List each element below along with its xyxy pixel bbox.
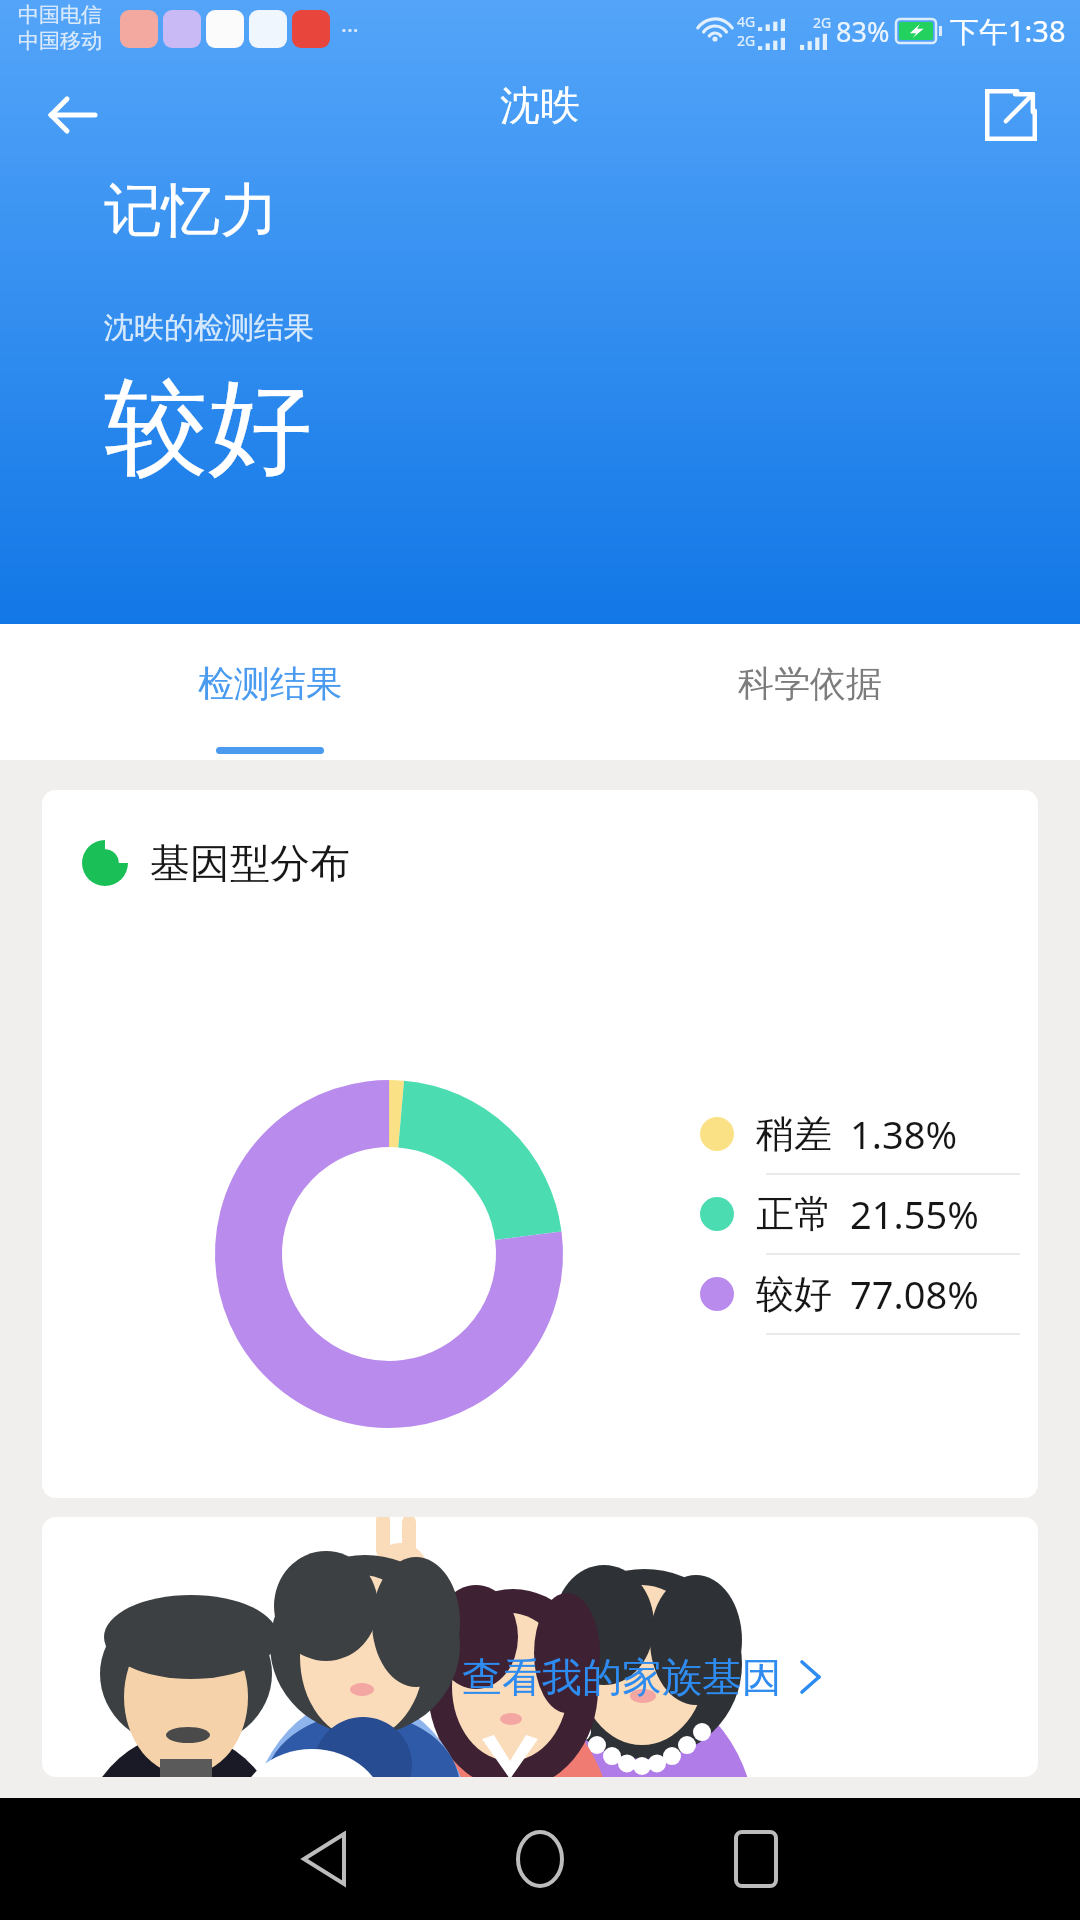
staticText: 21.55% <box>850 1188 979 1240</box>
staticText: 2G <box>813 13 832 32</box>
staticText: 沈昳的检测结果 <box>104 309 314 347</box>
staticText: 83% <box>836 13 890 50</box>
staticText: 较好 <box>756 1270 832 1318</box>
staticText: 4G <box>737 12 756 31</box>
button[interactable]: Recent apps <box>648 1798 864 1920</box>
button[interactable]: Home <box>432 1798 648 1920</box>
staticText: 中国电信 <box>18 2 102 28</box>
button[interactable]: 基因型分布 <box>42 790 1038 1498</box>
staticText: 下午1:38 <box>950 11 1066 51</box>
staticText: 77.08% <box>850 1268 979 1320</box>
button[interactable]: 科学依据 <box>540 624 1080 760</box>
button[interactable]: 检测结果 <box>0 624 540 760</box>
staticText: 记忆力 <box>104 174 278 247</box>
staticText: 2G <box>737 31 756 50</box>
button[interactable]: Share <box>968 72 1054 158</box>
staticText: 基因型分布 <box>150 838 350 888</box>
staticText: 较好 <box>104 363 312 494</box>
button[interactable]: Back <box>216 1798 432 1920</box>
staticText: 中国移动 <box>18 28 102 54</box>
staticText: 科学依据 <box>738 661 882 706</box>
staticText: 检测结果 <box>198 661 342 706</box>
staticText: 1.38% <box>850 1108 957 1160</box>
staticText: ··· <box>341 14 359 44</box>
button[interactable]: Back <box>30 72 116 158</box>
staticText: 查看我的家族基因 <box>462 1652 782 1702</box>
staticText: 稍差 <box>756 1110 832 1158</box>
staticText: 正常 <box>756 1190 832 1238</box>
staticText: 沈昳 <box>500 80 580 130</box>
button[interactable]: 查看我的家族基因 <box>42 1517 1038 1777</box>
